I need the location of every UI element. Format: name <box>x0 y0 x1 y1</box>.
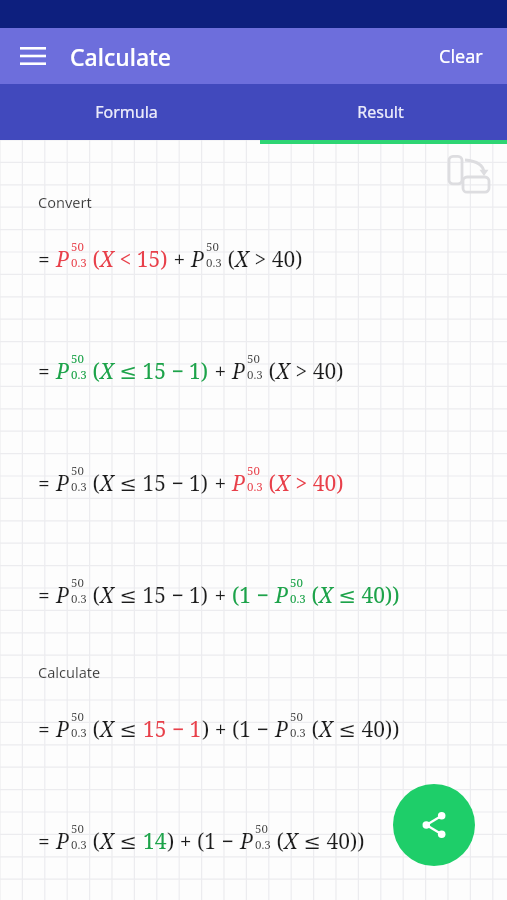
staticText: ( <box>263 357 276 386</box>
staticText: P <box>240 827 254 856</box>
staticText: ≤ 40)) <box>333 715 400 744</box>
staticText: + <box>209 581 232 610</box>
staticText: ( <box>263 469 276 498</box>
staticText: X <box>235 245 249 274</box>
staticText: > 40) <box>290 357 344 386</box>
button[interactable]: Share <box>393 784 475 866</box>
staticText: X <box>319 581 333 610</box>
staticText: ( <box>222 245 235 274</box>
staticText: Calculate <box>70 41 172 72</box>
staticText: 0.3 <box>71 479 87 495</box>
staticText: X <box>276 469 290 498</box>
staticText: Formula <box>95 101 158 123</box>
staticText: (1 − <box>232 581 275 610</box>
staticText: 50 <box>290 709 303 725</box>
staticText: 50 <box>206 239 219 255</box>
staticText: 0.3 <box>290 591 306 607</box>
staticText: 50 <box>247 463 260 479</box>
staticText: ≤ 15 − 1) <box>114 357 209 386</box>
staticText: 14 <box>143 827 167 856</box>
staticText: = <box>38 245 56 274</box>
staticText: P <box>275 715 289 744</box>
staticText: P <box>232 357 246 386</box>
staticText: ≤ 40)) <box>333 581 400 610</box>
staticText: 0.3 <box>206 255 222 271</box>
staticText: 50 <box>290 575 303 591</box>
staticText: ) + (1 − <box>202 715 275 744</box>
staticText: P <box>191 245 205 274</box>
staticText: Result <box>357 101 404 123</box>
staticText: X <box>100 469 114 498</box>
staticText: X <box>100 827 114 856</box>
staticText: ( <box>87 469 100 498</box>
button[interactable]: Open navigation menu <box>20 38 56 74</box>
staticText: 50 <box>247 351 260 367</box>
button[interactable]: Result <box>253 84 507 140</box>
staticText: 0.3 <box>290 725 306 741</box>
staticText: 50 <box>71 575 84 591</box>
staticText: ( <box>306 581 319 610</box>
staticText: = <box>38 357 56 386</box>
staticText: + <box>168 245 191 274</box>
staticText: X <box>284 827 298 856</box>
staticText: P <box>232 469 246 498</box>
staticText: 50 <box>71 463 84 479</box>
staticText: 0.3 <box>71 255 87 271</box>
staticText: 0.3 <box>71 725 87 741</box>
staticText: 50 <box>71 351 84 367</box>
staticText: = <box>38 827 56 856</box>
staticText: = <box>38 469 56 498</box>
staticText: Convert <box>38 192 92 212</box>
staticText: + <box>209 469 232 498</box>
staticText: < 15) <box>114 245 168 274</box>
staticText: P <box>56 245 70 274</box>
staticText: + <box>209 357 232 386</box>
staticText: ≤ 15 − 1) <box>114 581 209 610</box>
staticText: P <box>56 581 70 610</box>
staticText: 15 − 1 <box>143 715 202 744</box>
staticText: ( <box>87 581 100 610</box>
staticText: X <box>100 581 114 610</box>
staticText: Calculate <box>38 662 101 682</box>
staticText: ( <box>87 357 100 386</box>
staticText: > 40) <box>290 469 344 498</box>
staticText: ( <box>306 715 319 744</box>
staticText: 0.3 <box>71 591 87 607</box>
staticText: 0.3 <box>71 367 87 383</box>
staticText: X <box>100 245 114 274</box>
staticText: 0.3 <box>247 479 263 495</box>
staticText: ≤ <box>114 827 143 856</box>
staticText: ( <box>271 827 284 856</box>
button[interactable]: Rotate screen <box>443 154 493 200</box>
staticText: Clear <box>439 44 483 69</box>
staticText: 50 <box>255 821 268 837</box>
staticText: P <box>56 469 70 498</box>
staticText: = <box>38 715 56 744</box>
staticText: X <box>319 715 333 744</box>
staticText: = <box>38 581 56 610</box>
staticText: P <box>275 581 289 610</box>
staticText: ≤ <box>114 715 143 744</box>
staticText: P <box>56 827 70 856</box>
staticText: ) + (1 − <box>167 827 240 856</box>
staticText: > 40) <box>249 245 303 274</box>
staticText: X <box>100 715 114 744</box>
staticText: ( <box>87 245 100 274</box>
button[interactable]: Formula <box>0 84 253 140</box>
staticText: 50 <box>71 239 84 255</box>
staticText: 50 <box>71 821 84 837</box>
staticText: ( <box>87 715 100 744</box>
staticText: ≤ 15 − 1) <box>114 469 209 498</box>
staticText: 0.3 <box>71 837 87 853</box>
staticText: 0.3 <box>247 367 263 383</box>
staticText: 50 <box>71 709 84 725</box>
staticText: ≤ 40)) <box>298 827 365 856</box>
staticText: 0.3 <box>255 837 271 853</box>
staticText: P <box>56 715 70 744</box>
staticText: ( <box>87 827 100 856</box>
staticText: X <box>276 357 290 386</box>
staticText: X <box>100 357 114 386</box>
staticText: P <box>56 357 70 386</box>
button[interactable]: Clear <box>435 36 487 77</box>
